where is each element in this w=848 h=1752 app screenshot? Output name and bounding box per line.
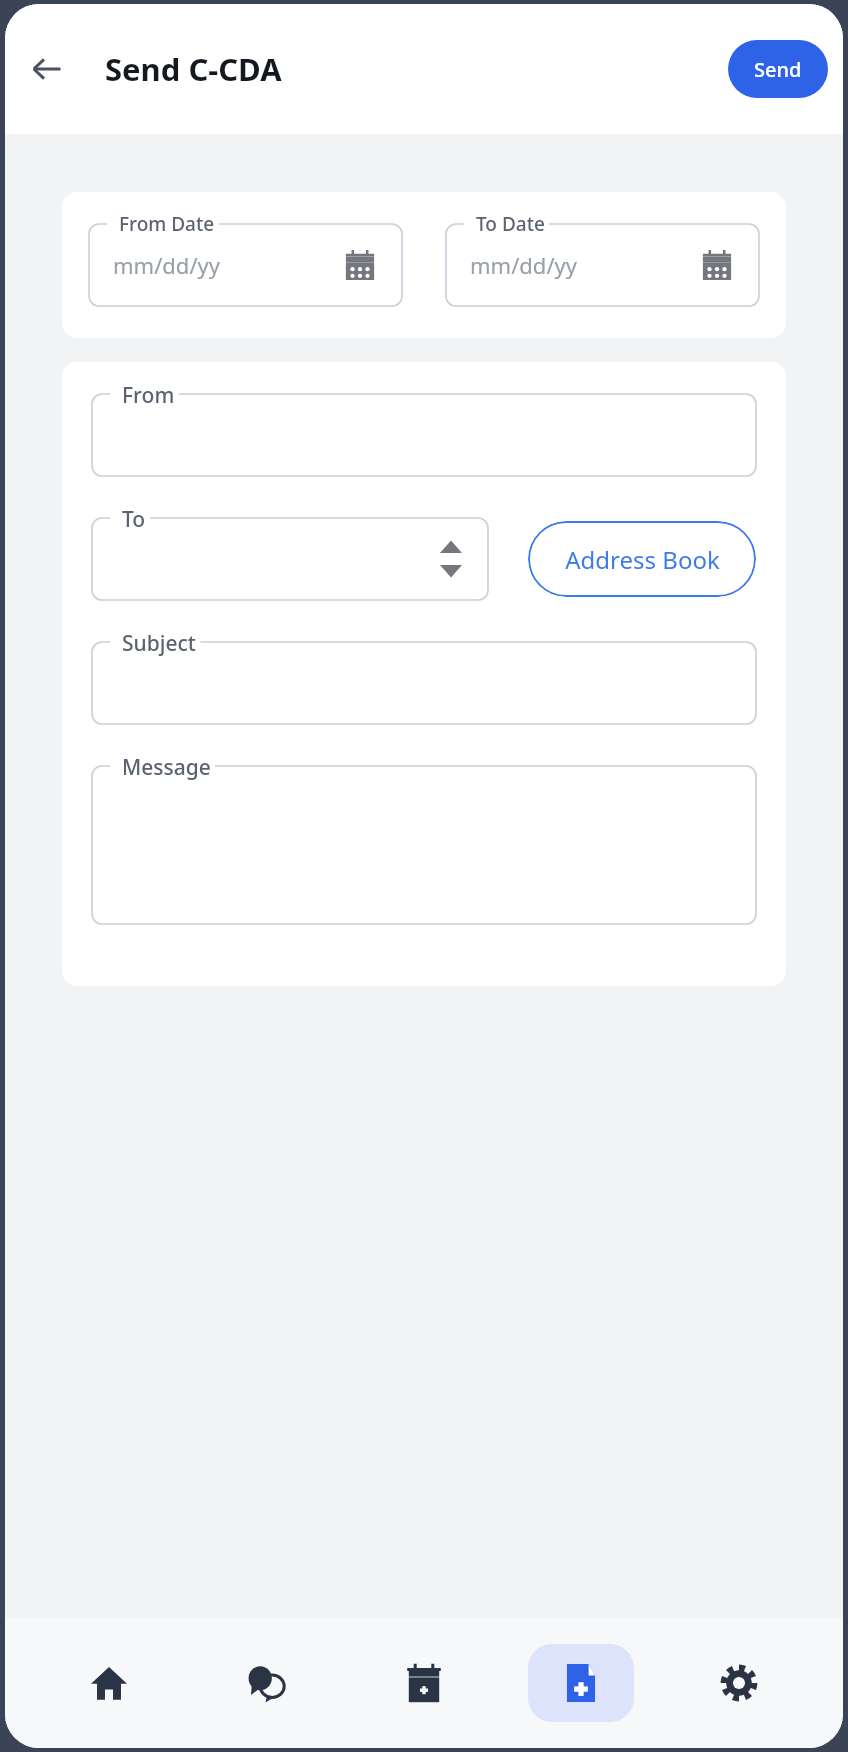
button[interactable]: Back xyxy=(19,41,75,97)
staticText: mm/dd/yy xyxy=(470,250,578,280)
staticText: Subject xyxy=(122,629,196,658)
button[interactable]: Select recipient xyxy=(438,536,464,582)
button[interactable]: Pick date xyxy=(342,247,378,283)
button[interactable]: Pick date xyxy=(699,247,735,283)
button[interactable]: Settings xyxy=(686,1644,792,1722)
staticText: Address Book xyxy=(565,543,720,576)
button[interactable]: Schedule xyxy=(371,1644,477,1722)
button[interactable]: Home xyxy=(56,1644,162,1722)
staticText: Message xyxy=(122,753,211,782)
staticText: To Date xyxy=(476,211,545,237)
staticText: From xyxy=(122,381,175,410)
staticText: From Date xyxy=(119,211,215,237)
button[interactable]: Address Book xyxy=(528,521,756,597)
button[interactable]: Send xyxy=(728,40,828,98)
staticText: Send xyxy=(754,56,802,83)
staticText: mm/dd/yy xyxy=(113,250,221,280)
staticText: To xyxy=(122,505,146,534)
staticText: Send C-CDA xyxy=(105,48,282,90)
button[interactable]: Messages xyxy=(214,1644,320,1722)
button[interactable]: Documents xyxy=(528,1644,634,1722)
